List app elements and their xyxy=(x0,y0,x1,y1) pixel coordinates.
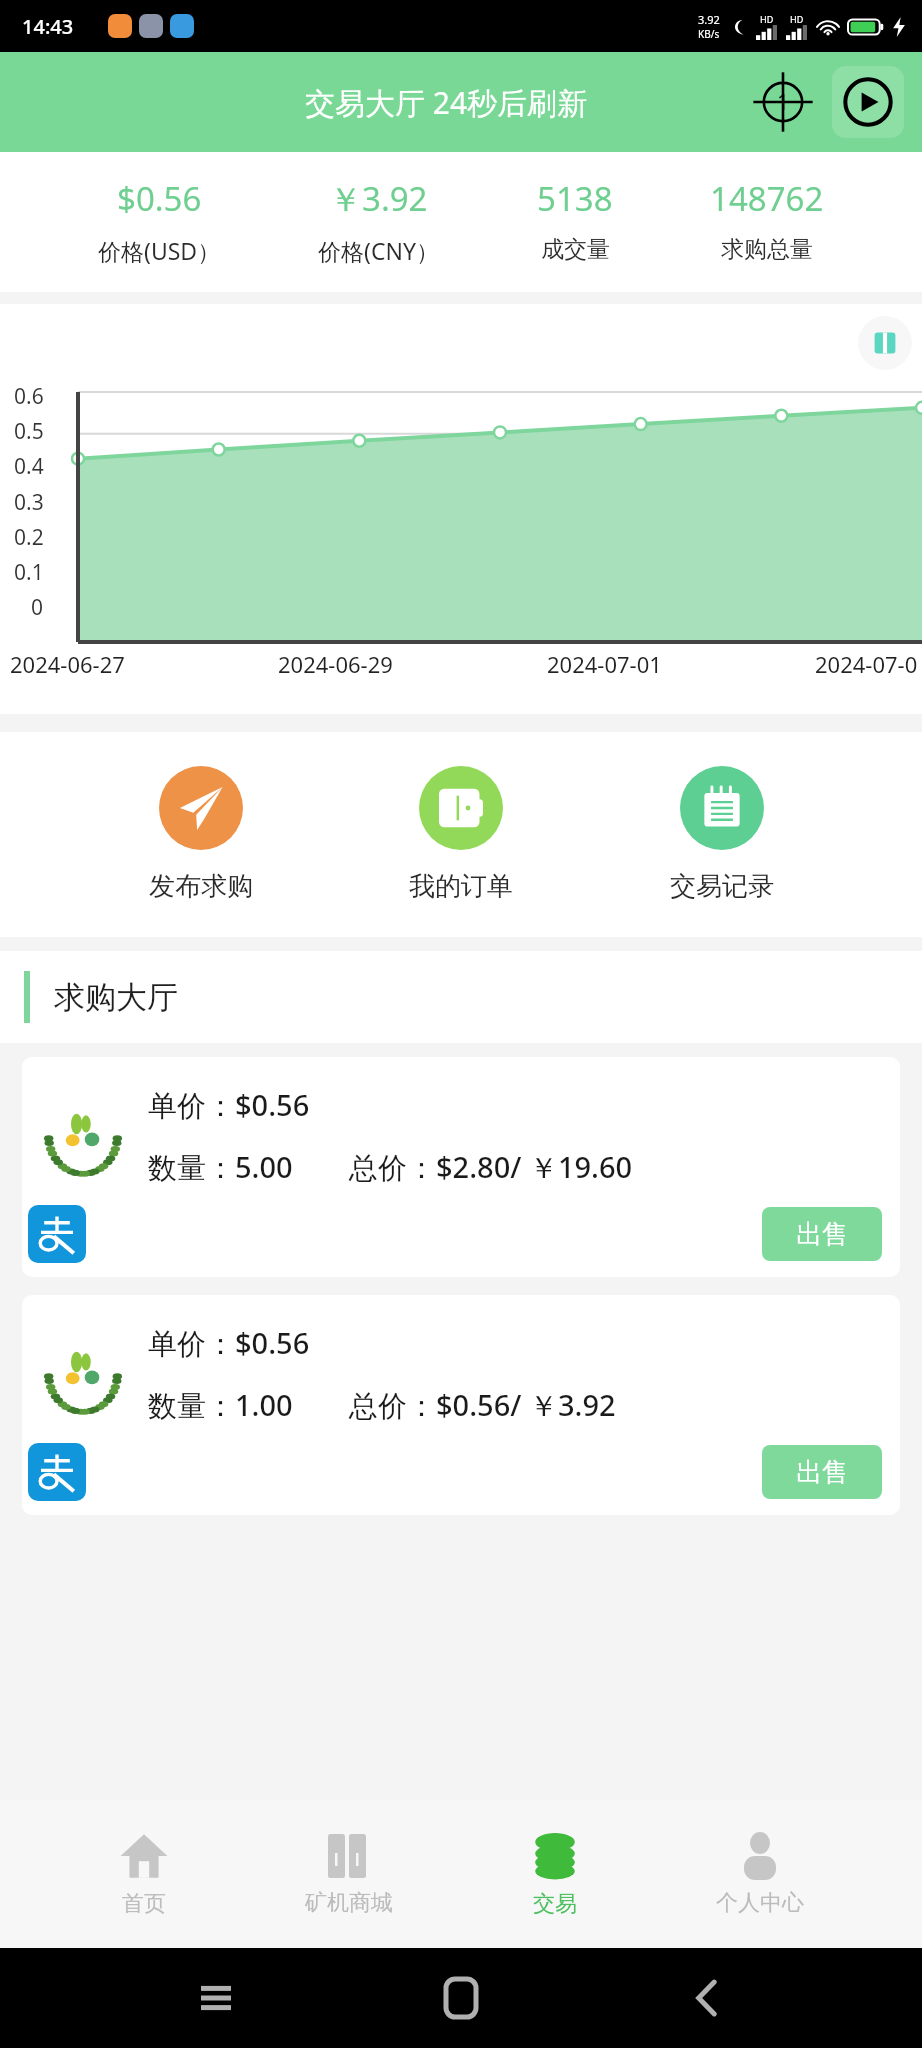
staticText: 求购总量 xyxy=(721,235,813,264)
staticText: HD xyxy=(790,13,804,25)
staticText: KB/s xyxy=(698,27,720,41)
staticText: 0 xyxy=(31,593,44,622)
staticText: 0.2 xyxy=(14,523,44,552)
staticText: 单价：$0.56 xyxy=(148,1085,310,1125)
staticText: ￥3.92 xyxy=(329,176,428,221)
button[interactable]: 单价：$0.56 xyxy=(22,1295,900,1515)
button[interactable]: Target xyxy=(754,73,812,131)
staticText: 0.6 xyxy=(14,382,44,411)
staticText: 单价：$0.56 xyxy=(148,1323,310,1363)
staticText: 1 xyxy=(777,88,790,117)
button[interactable]: 交易记录 xyxy=(662,766,782,903)
button[interactable]: 矿机商城 xyxy=(287,1825,411,1923)
button[interactable]: 出售 xyxy=(762,1207,882,1261)
staticText: 矿机商城 xyxy=(305,1889,393,1917)
staticText: 0.3 xyxy=(14,488,44,517)
staticText: 发布求购 xyxy=(149,870,253,903)
button[interactable]: 个人中心 xyxy=(698,1825,822,1923)
button[interactable]: Menu xyxy=(186,1968,246,2028)
button[interactable]: Back xyxy=(677,1968,737,2028)
staticText: 价格(USD） xyxy=(98,235,221,266)
staticText: 成交量 xyxy=(541,235,610,264)
staticText: 求购大厅 xyxy=(54,978,178,1017)
staticText: 总价：$0.56/ ￥3.92 xyxy=(349,1385,616,1425)
button[interactable]: 交易 xyxy=(511,1824,599,1924)
staticText: 出售 xyxy=(796,1456,848,1489)
button[interactable]: Play xyxy=(832,66,904,138)
staticText: 出售 xyxy=(796,1218,848,1251)
staticText: 0.4 xyxy=(14,452,44,481)
staticText: 数量：1.00 xyxy=(148,1385,293,1425)
staticText: HD xyxy=(760,13,774,25)
staticText: 交易 xyxy=(533,1890,577,1918)
staticText: 2024-06-27 xyxy=(10,649,125,679)
staticText: 个人中心 xyxy=(716,1889,804,1917)
staticText: 5138 xyxy=(537,176,613,221)
staticText: 价格(CNY） xyxy=(318,235,439,266)
staticText: 0.1 xyxy=(14,558,44,587)
staticText: 总价：$2.80/ ￥19.60 xyxy=(349,1147,633,1187)
staticText: 首页 xyxy=(122,1890,166,1918)
staticText: 3.92 xyxy=(698,12,720,27)
button[interactable]: 单价：$0.56 xyxy=(22,1057,900,1277)
staticText: 2024-07-0 xyxy=(815,649,918,679)
staticText: 交易记录 xyxy=(670,870,774,903)
button[interactable]: Home xyxy=(431,1968,491,2028)
staticText: 0.5 xyxy=(14,417,44,446)
button[interactable]: 我的订单 xyxy=(401,766,521,903)
staticText: 交易大厅 24秒后刷新 xyxy=(305,82,588,123)
staticText: 数量：5.00 xyxy=(148,1147,293,1187)
staticText: 2024-07-01 xyxy=(547,649,662,679)
staticText: 14:43 xyxy=(22,13,74,40)
button[interactable]: 发布求购 xyxy=(141,766,261,903)
staticText: 148762 xyxy=(710,176,824,221)
staticText: $0.56 xyxy=(117,176,202,221)
button[interactable]: 出售 xyxy=(762,1445,882,1499)
staticText: 2024-06-29 xyxy=(278,649,393,679)
button[interactable]: 首页 xyxy=(100,1824,188,1924)
staticText: 我的订单 xyxy=(409,870,513,903)
